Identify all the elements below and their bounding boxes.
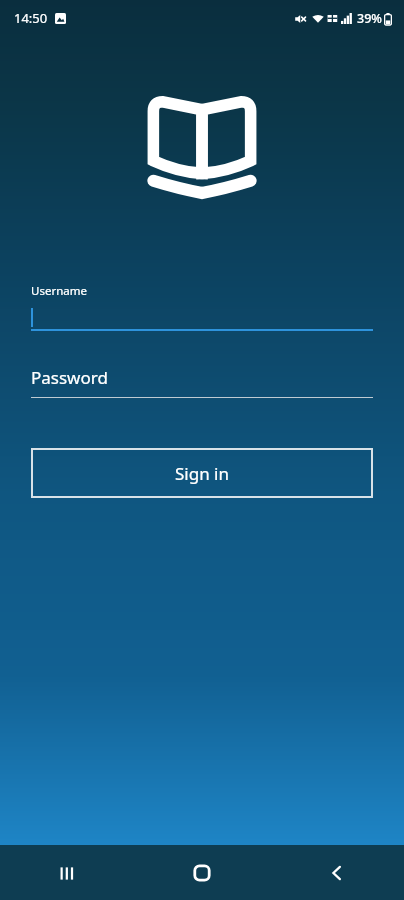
staticText: 14:50 xyxy=(14,9,48,27)
button[interactable]: Password xyxy=(31,366,373,398)
staticText: Sign in xyxy=(175,462,229,485)
button[interactable]: Home xyxy=(175,846,229,900)
other: App logo xyxy=(147,96,257,202)
button[interactable]: Sign in xyxy=(31,448,373,498)
staticText: 39% xyxy=(357,10,382,27)
staticText: Username xyxy=(31,283,87,299)
button[interactable]: Recent apps xyxy=(40,846,94,900)
staticText: Password xyxy=(31,366,108,389)
button[interactable]: Back xyxy=(310,846,364,900)
button[interactable]: Username xyxy=(31,283,373,331)
